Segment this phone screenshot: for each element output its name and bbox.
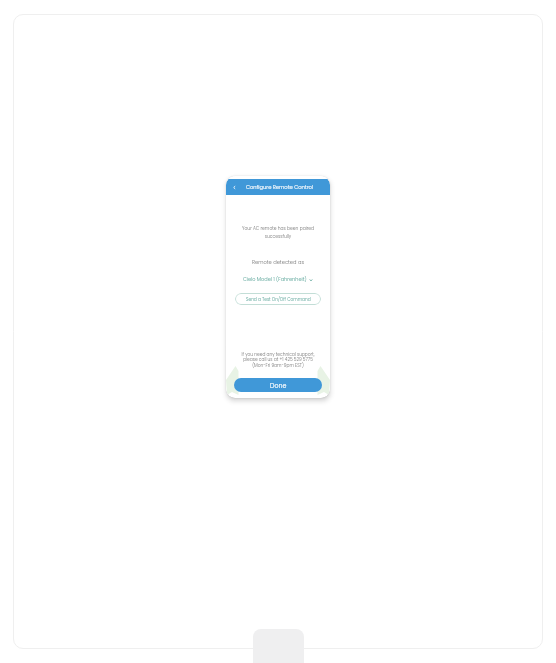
staticText: If you need any technical support, pleas… <box>226 351 330 369</box>
button[interactable]: Configure Remote Control <box>226 179 330 195</box>
staticText: Remote detected as <box>226 259 330 266</box>
staticText: Send a Test On/Off Command <box>246 296 311 302</box>
button[interactable]: Cielo Model 1 (Fahrenheit) <box>226 276 330 283</box>
button[interactable]: Done <box>234 378 322 392</box>
staticText: Your AC remote has been paired successfu… <box>239 225 317 239</box>
staticText: Cielo Model 1 (Fahrenheit) <box>243 276 307 283</box>
staticText: Configure Remote Control <box>246 184 314 191</box>
button[interactable]: Send a Test On/Off Command <box>235 293 321 305</box>
button[interactable]: Back <box>226 179 242 195</box>
staticText: Done <box>270 381 287 390</box>
